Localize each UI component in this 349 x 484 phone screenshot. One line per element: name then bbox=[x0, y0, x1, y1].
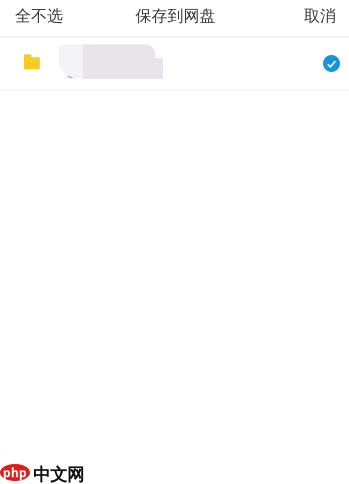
button[interactable]: 已选中 bbox=[308, 38, 349, 89]
staticText: 中文网 bbox=[33, 464, 84, 484]
staticText: php bbox=[3, 464, 27, 480]
button[interactable]: 文件夹 bbox=[0, 38, 308, 89]
staticText: 保存到网盘 bbox=[135, 6, 215, 26]
button[interactable]: 全不选 bbox=[0, 2, 75, 34]
staticText: 全不选 bbox=[15, 6, 63, 26]
button[interactable]: 取消 bbox=[292, 2, 349, 34]
staticText: 取消 bbox=[304, 6, 336, 26]
